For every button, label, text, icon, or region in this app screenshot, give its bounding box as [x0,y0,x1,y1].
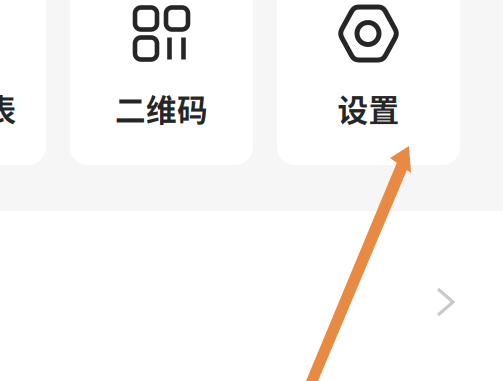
staticText: 营业报表 [0,86,16,130]
button[interactable]: 营业报表 [0,0,46,165]
button[interactable]: 二维码 [70,0,253,165]
button[interactable]: 设置 [277,0,460,165]
staticText: 二维码 [115,86,208,130]
staticText: 设置 [337,86,399,130]
button[interactable]: Open [0,259,503,345]
